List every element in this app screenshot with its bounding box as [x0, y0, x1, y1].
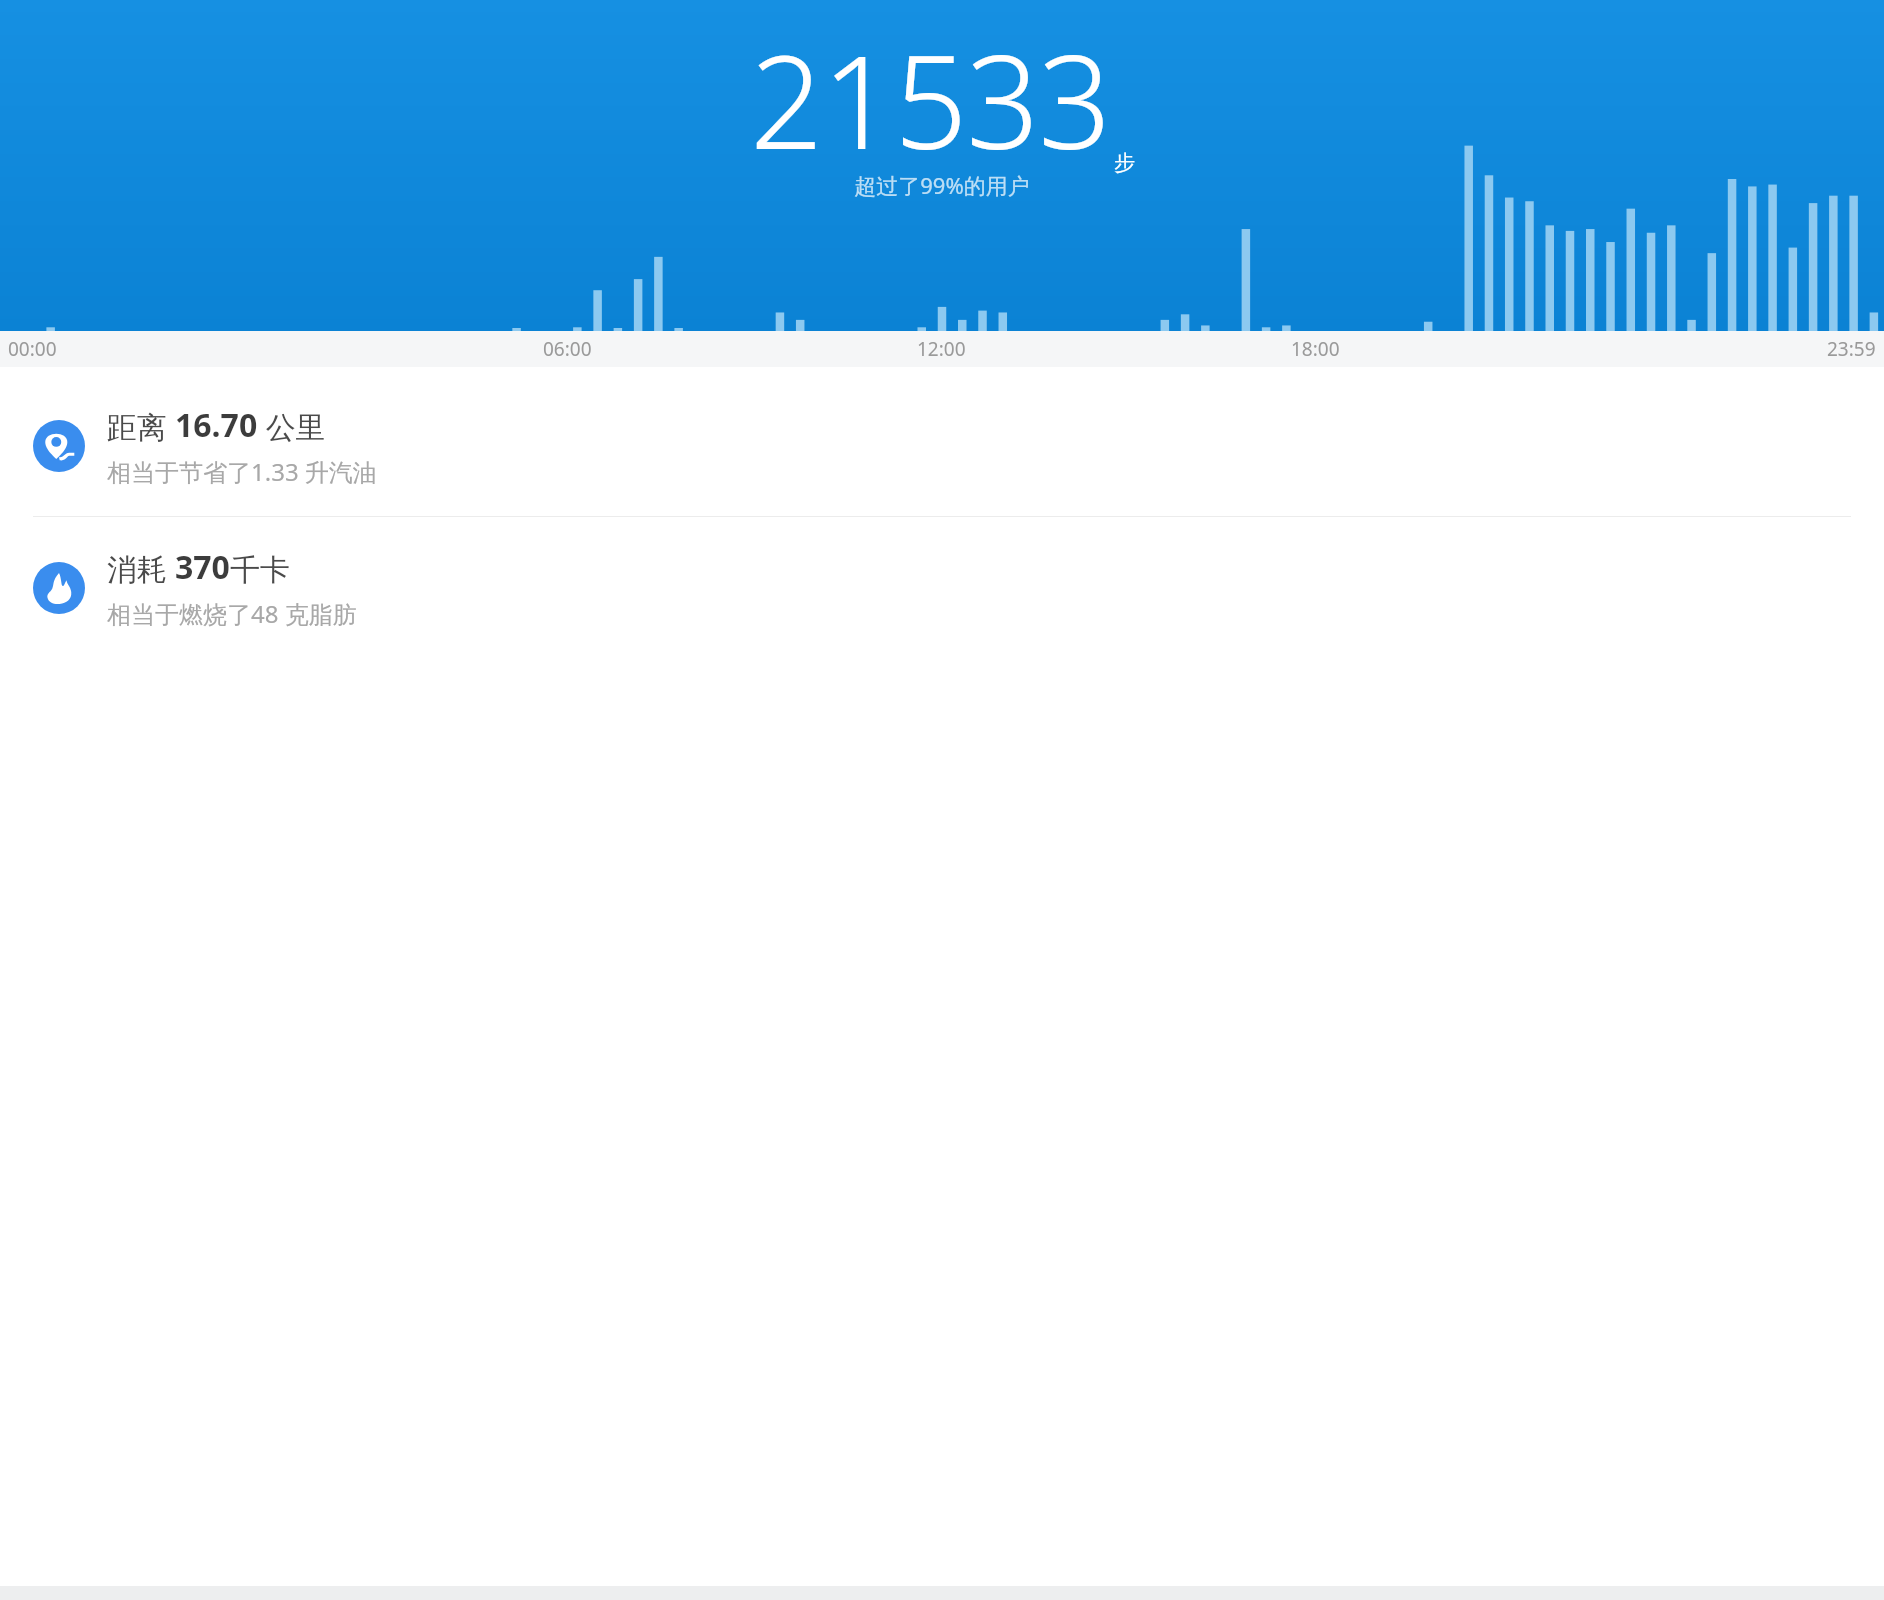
other: Calories [33, 562, 85, 614]
staticText: 超过了99%的用户 [854, 170, 1030, 200]
button[interactable]: Distance [0, 393, 1884, 498]
staticText: 18:00 [1291, 336, 1340, 362]
staticText: 16.70 [175, 403, 258, 447]
staticText: 消耗 [107, 548, 175, 589]
staticText: 06:00 [543, 336, 592, 362]
button[interactable]: Calories [0, 535, 1884, 640]
staticText: 相当于节省了1.33 升汽油 [107, 455, 377, 488]
staticText: 12:00 [917, 336, 966, 362]
staticText: 23:59 [1827, 336, 1876, 362]
staticText: 公里 [258, 406, 326, 447]
other: Distance [33, 420, 85, 472]
staticText: 21533 [750, 12, 1111, 186]
staticText: 00:00 [8, 336, 57, 362]
staticText: 370 [175, 545, 230, 589]
staticText: 相当于燃烧了48 克脂肪 [107, 597, 357, 630]
staticText: 距离 [107, 406, 175, 447]
staticText: 千卡 [230, 551, 290, 589]
staticText: 步 [1114, 150, 1135, 176]
